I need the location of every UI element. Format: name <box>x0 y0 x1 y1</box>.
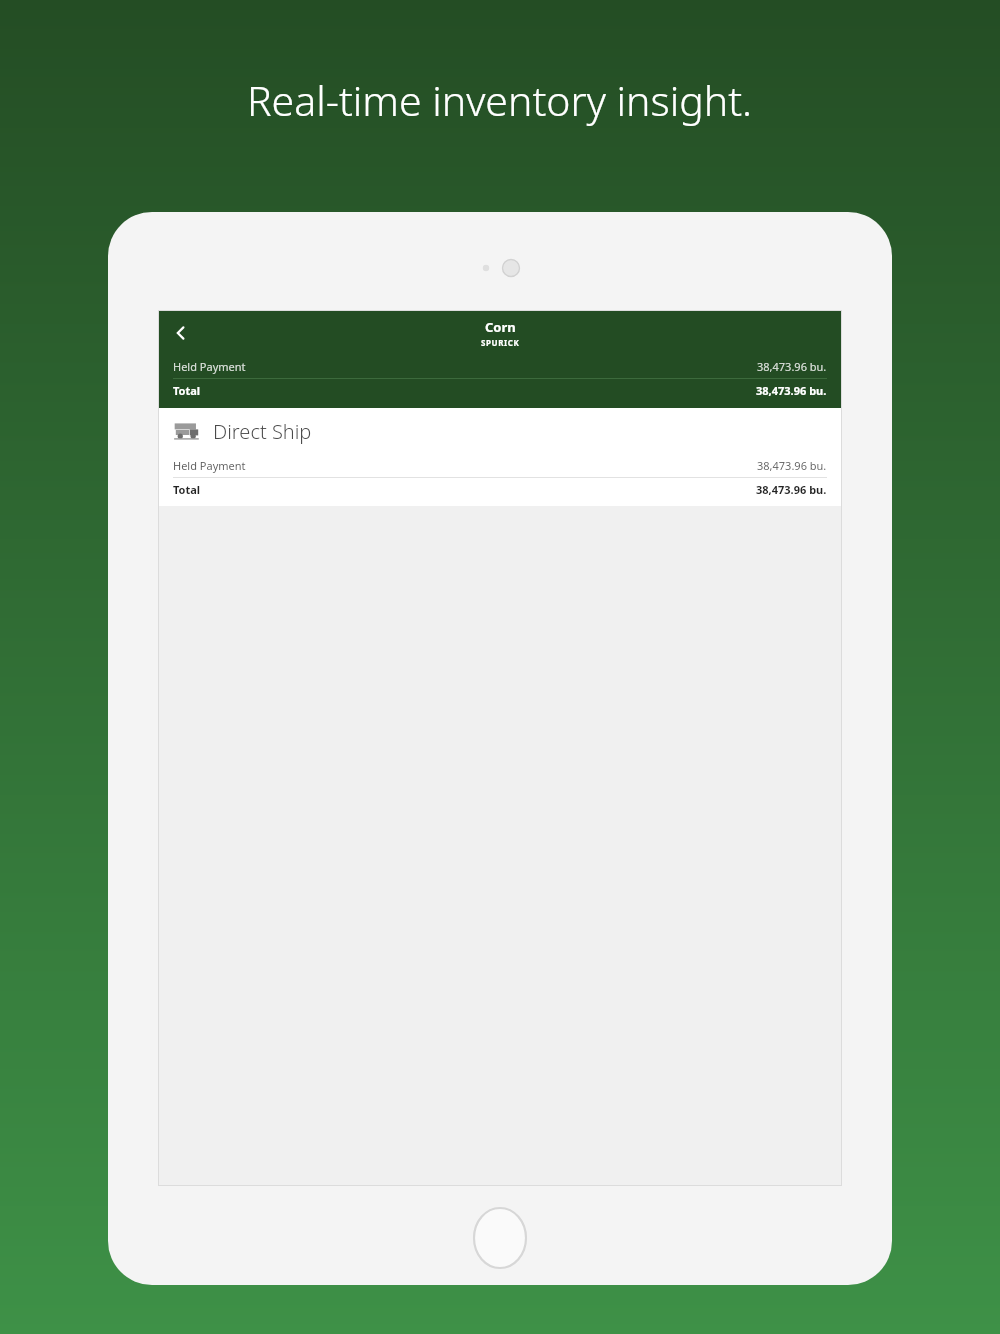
button[interactable]: Held Payment <box>159 454 841 478</box>
button[interactable]: Total <box>159 478 841 501</box>
staticText: 38,473.96 bu. <box>757 359 827 374</box>
button[interactable]: Back <box>159 311 203 355</box>
button[interactable]: Held Payment <box>159 355 841 379</box>
staticText: 38,473.96 bu. <box>756 482 827 497</box>
staticText: Real-time inventory insight. <box>247 72 753 128</box>
button[interactable]: Direct Ship <box>159 408 841 454</box>
staticText: 38,473.96 bu. <box>757 458 827 473</box>
staticText: Direct Ship <box>213 418 312 445</box>
button[interactable]: Total <box>159 379 841 402</box>
staticText: Total <box>173 482 201 497</box>
staticText: Held Payment <box>173 458 246 473</box>
staticText: Total <box>173 383 201 398</box>
staticText: Corn <box>485 318 516 336</box>
staticText: SPURICK <box>481 337 520 348</box>
staticText: 38,473.96 bu. <box>756 383 827 398</box>
staticText: Held Payment <box>173 359 246 374</box>
